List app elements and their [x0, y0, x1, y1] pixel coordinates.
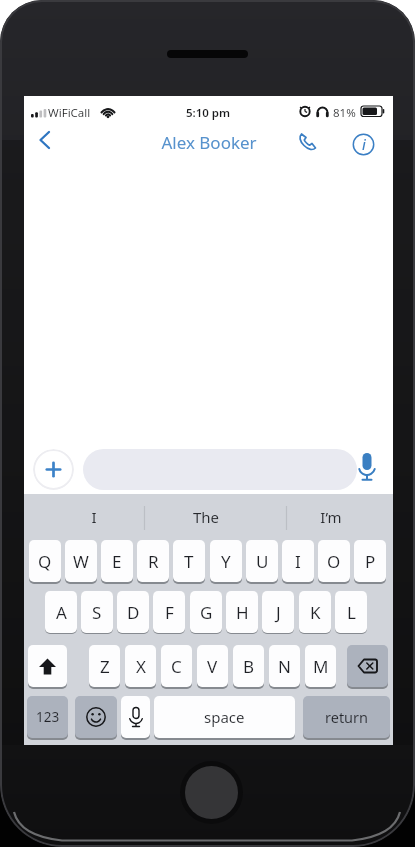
staticText: G [200, 601, 213, 624]
staticText: I [295, 550, 301, 573]
button[interactable]: O [318, 540, 350, 582]
staticText: space [204, 707, 245, 727]
button[interactable]: E [101, 540, 133, 582]
button[interactable] [28, 645, 67, 687]
button[interactable]: i [352, 133, 375, 156]
button[interactable]: B [233, 645, 264, 687]
button[interactable]: D [117, 591, 149, 633]
staticText: O [327, 550, 341, 573]
staticText: B [243, 655, 255, 678]
staticText: X [136, 655, 146, 678]
button[interactable]: F [153, 591, 185, 633]
staticText: W [73, 550, 89, 573]
staticText: Y [221, 550, 231, 573]
button[interactable]: Z [89, 645, 120, 687]
button[interactable]: K [299, 591, 331, 633]
button[interactable]: P [354, 540, 386, 582]
staticText: Z [100, 655, 110, 678]
button[interactable]: Alex Booker [144, 131, 274, 155]
staticText: F [165, 601, 174, 624]
staticText: WiFiCall [48, 105, 91, 121]
button[interactable]: R [137, 540, 169, 582]
button[interactable]: I’m [301, 507, 361, 529]
button[interactable] [33, 449, 74, 490]
staticText: 5:10 pm [182, 105, 234, 121]
button[interactable]: L [335, 591, 367, 633]
staticText: A [56, 601, 67, 624]
staticText: V [207, 655, 218, 678]
button[interactable] [356, 451, 380, 485]
button[interactable]: space [154, 696, 295, 738]
staticText: H [236, 601, 249, 624]
button[interactable] [121, 696, 150, 738]
staticText: L [347, 601, 356, 624]
button[interactable] [83, 449, 357, 490]
staticText: return [325, 707, 369, 727]
button[interactable]: W [65, 540, 97, 582]
button[interactable] [347, 645, 388, 687]
button[interactable]: return [303, 696, 390, 738]
staticText: J [276, 601, 281, 624]
staticText: D [127, 601, 140, 624]
button[interactable]: J [262, 591, 294, 633]
button[interactable]: U [246, 540, 278, 582]
staticText: N [278, 655, 291, 678]
button[interactable]: S [81, 591, 113, 633]
button[interactable] [296, 130, 324, 156]
staticText: 81% [333, 105, 356, 121]
button[interactable]: V [197, 645, 228, 687]
button[interactable] [32, 126, 58, 154]
button[interactable]: I [64, 507, 124, 529]
button[interactable] [180, 761, 243, 824]
button[interactable]: G [190, 591, 222, 633]
button[interactable]: H [226, 591, 258, 633]
button[interactable]: Q [29, 540, 61, 582]
button[interactable]: C [161, 645, 192, 687]
staticText: R [148, 550, 159, 573]
button[interactable]: T [173, 540, 205, 582]
staticText: i [362, 135, 366, 154]
button[interactable]: The [176, 507, 236, 529]
button[interactable]: A [45, 591, 77, 633]
button[interactable]: N [269, 645, 300, 687]
staticText: 123 [36, 708, 60, 726]
button[interactable]: X [125, 645, 156, 687]
staticText: C [171, 655, 182, 678]
staticText: U [256, 550, 269, 573]
button[interactable]: 123 [27, 696, 68, 738]
staticText: Q [38, 550, 52, 573]
staticText: P [365, 550, 376, 573]
staticText: M [313, 655, 329, 678]
button[interactable]: Y [210, 540, 242, 582]
button[interactable]: M [305, 645, 336, 687]
button[interactable]: I [282, 540, 314, 582]
staticText: E [112, 550, 122, 573]
button[interactable] [75, 696, 117, 738]
staticText: T [184, 550, 194, 573]
staticText: K [310, 601, 321, 624]
staticText: S [92, 601, 102, 624]
